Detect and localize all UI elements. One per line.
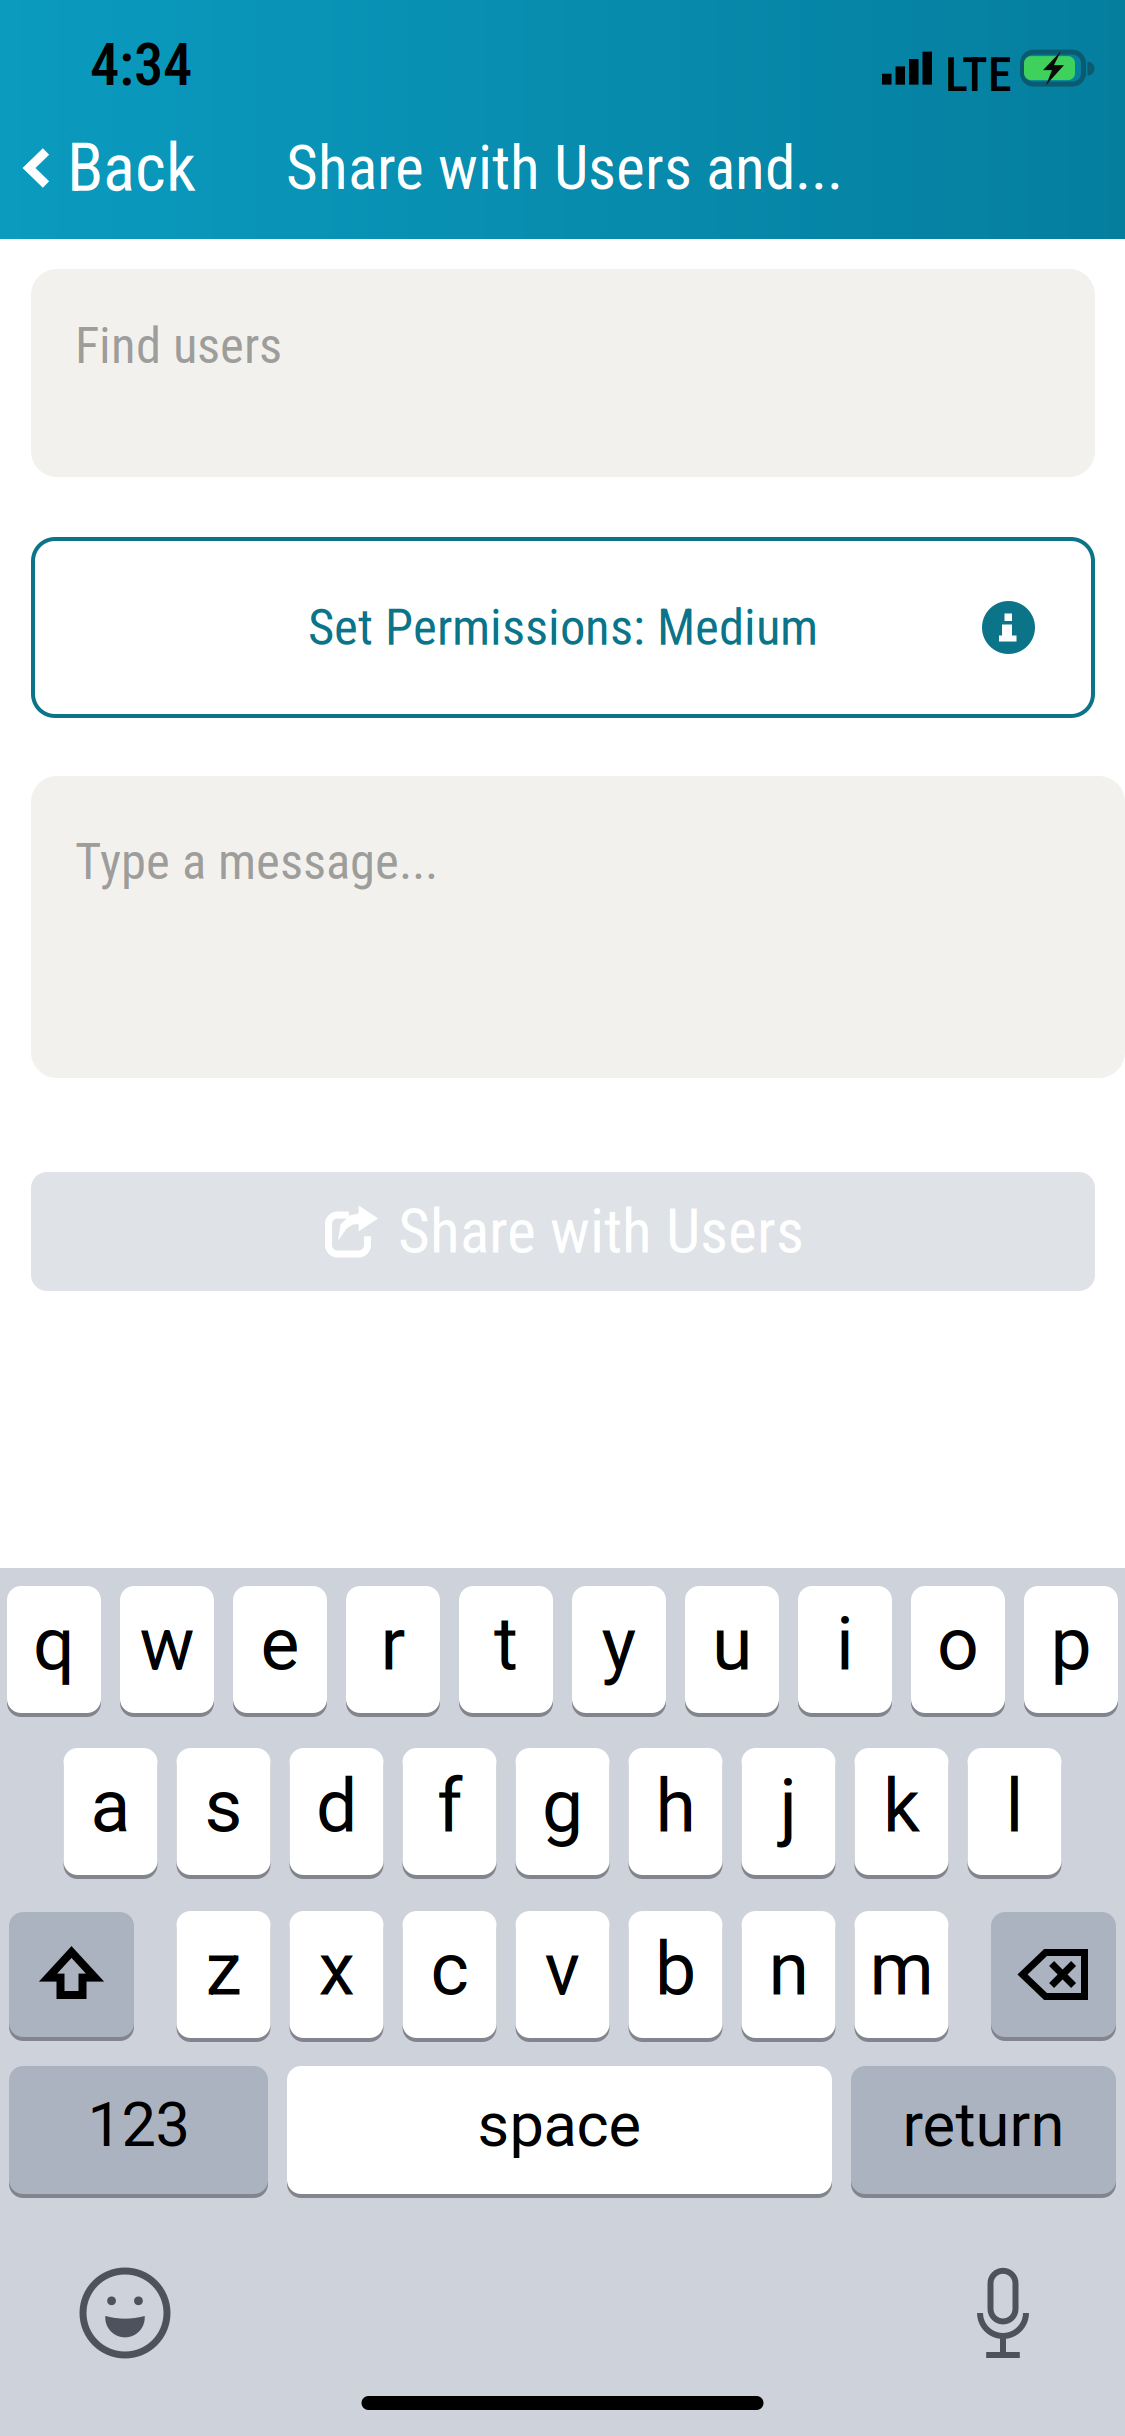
staticText: x	[318, 1926, 354, 2012]
staticText: Back	[67, 129, 196, 207]
button[interactable]: a	[63, 1746, 157, 1877]
button[interactable]: n	[741, 1909, 835, 2040]
button[interactable]: x	[289, 1909, 383, 2040]
button[interactable]: o	[911, 1584, 1005, 1715]
button[interactable]: g	[515, 1746, 609, 1877]
staticText: Type a message...	[75, 832, 438, 891]
staticText: Find users	[75, 316, 282, 375]
staticText: d	[316, 1763, 357, 1849]
button[interactable]: Dictation	[975, 2268, 1031, 2358]
button[interactable]: b	[628, 1909, 722, 2040]
staticText: b	[655, 1926, 696, 2012]
button[interactable]: Find users	[0, 239, 1125, 477]
button[interactable]: w	[120, 1584, 214, 1715]
staticText: y	[601, 1601, 636, 1687]
staticText: z	[205, 1926, 241, 2012]
staticText: j	[779, 1763, 797, 1849]
button[interactable]: r	[346, 1584, 440, 1715]
staticText: t	[494, 1601, 518, 1687]
button[interactable]: y	[572, 1584, 666, 1715]
button[interactable]: space	[287, 2064, 832, 2196]
button[interactable]: Set Permissions: Medium	[0, 477, 1125, 716]
staticText: Set Permissions: Medium	[308, 598, 818, 657]
button[interactable]: h	[628, 1746, 722, 1877]
button[interactable]: s	[176, 1746, 270, 1877]
staticText: c	[430, 1926, 468, 2012]
staticText: f	[437, 1763, 462, 1849]
staticText: LTE	[945, 47, 1012, 103]
staticText: Share with Users	[398, 1196, 804, 1267]
staticText: i	[836, 1601, 854, 1687]
button[interactable]: f	[402, 1746, 496, 1877]
staticText: e	[260, 1601, 299, 1687]
staticText: g	[542, 1763, 583, 1849]
button[interactable]: 123	[9, 2064, 268, 2196]
staticText: u	[712, 1601, 752, 1687]
button[interactable]: t	[459, 1584, 553, 1715]
staticText: n	[768, 1926, 808, 2012]
button[interactable]: q	[7, 1584, 101, 1715]
staticText: space	[477, 2089, 641, 2161]
button[interactable]: Back	[0, 98, 216, 237]
button[interactable]: c	[402, 1909, 496, 2040]
staticText: Share with Users and...	[286, 132, 843, 204]
button[interactable]: m	[854, 1909, 948, 2040]
staticText: w	[139, 1601, 194, 1687]
button[interactable]: i	[798, 1584, 892, 1715]
staticText: r	[380, 1601, 405, 1687]
button[interactable]: z	[176, 1909, 270, 2040]
button[interactable]: d	[289, 1746, 383, 1877]
staticText: p	[1050, 1601, 1091, 1687]
staticText: l	[1005, 1763, 1023, 1849]
staticText: v	[544, 1926, 580, 2012]
staticText: a	[90, 1763, 130, 1849]
button[interactable]: return	[851, 2064, 1116, 2196]
button[interactable]: p	[1024, 1584, 1118, 1715]
button[interactable]: Shift	[9, 1910, 134, 2039]
button[interactable]: Type a message...	[0, 716, 1125, 1078]
button[interactable]: v	[515, 1909, 609, 2040]
button[interactable]: u	[685, 1584, 779, 1715]
staticText: s	[204, 1763, 242, 1849]
button[interactable]: Emoji	[83, 2271, 167, 2355]
button[interactable]: Share with Users	[0, 1078, 1125, 1291]
staticText: h	[655, 1763, 695, 1849]
button[interactable]: j	[741, 1746, 835, 1877]
button[interactable]: e	[233, 1584, 327, 1715]
staticText: m	[869, 1926, 933, 2012]
button[interactable]: l	[967, 1746, 1061, 1877]
staticText: 123	[87, 2089, 189, 2161]
staticText: o	[937, 1601, 979, 1687]
staticText: return	[902, 2089, 1064, 2161]
staticText: 4:34	[90, 31, 192, 99]
staticText: q	[33, 1601, 75, 1687]
button[interactable]: Delete	[991, 1910, 1116, 2039]
button[interactable]: k	[854, 1746, 948, 1877]
staticText: k	[883, 1763, 920, 1849]
